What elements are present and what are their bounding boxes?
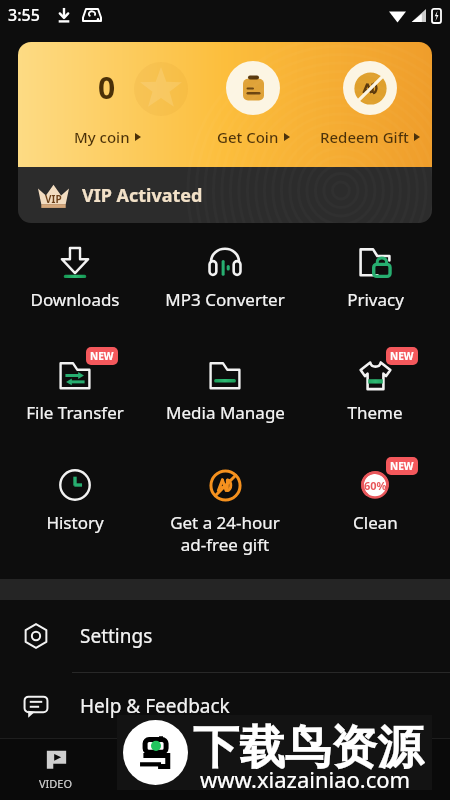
button[interactable]: GAME xyxy=(224,739,337,800)
button[interactable]: Settings xyxy=(0,600,450,672)
staticText: Settings xyxy=(80,623,153,649)
staticText: 下载鸟资源 xyxy=(193,719,423,777)
button[interactable]: ME xyxy=(337,739,450,800)
staticText: File Transfer xyxy=(26,401,124,424)
staticText: My coin xyxy=(74,127,130,147)
staticText: Privacy xyxy=(347,288,404,311)
button[interactable]: 60% xyxy=(300,468,450,534)
button[interactable]: History xyxy=(0,468,150,534)
staticText: VIP xyxy=(45,192,62,206)
button[interactable]: Redeem Gift xyxy=(300,42,432,167)
staticText: Clean xyxy=(353,511,398,534)
staticText: MP3 Converter xyxy=(165,288,285,311)
staticText: Help & Feedback xyxy=(80,693,230,719)
staticText: Redeem Gift xyxy=(320,127,409,147)
staticText: 0 xyxy=(98,67,116,108)
staticText: Theme xyxy=(347,401,403,424)
staticText: GAME xyxy=(265,776,297,791)
staticText: www.xiazainiao.com xyxy=(200,764,411,794)
staticText: NEW xyxy=(390,459,414,473)
button[interactable]: MP3 Converter xyxy=(150,245,300,311)
button[interactable]: Downloads xyxy=(0,245,150,311)
staticText: Media Manage xyxy=(166,401,285,424)
button[interactable]: Get a 24-hour ad-free gift xyxy=(150,468,300,556)
staticText: 60% xyxy=(364,478,387,493)
button[interactable]: 0 xyxy=(37,42,177,167)
staticText: MUSIC xyxy=(151,776,186,791)
staticText: Get a 24-hour ad-free gift xyxy=(170,511,280,556)
staticText: 3:55 xyxy=(8,4,40,26)
button[interactable]: VIDEO xyxy=(0,739,112,800)
staticText: Downloads xyxy=(30,288,120,311)
button[interactable]: Help & Feedback xyxy=(0,673,450,738)
button[interactable]: Get Coin xyxy=(183,42,323,167)
staticText: Get Coin xyxy=(217,127,279,147)
staticText: NEW xyxy=(90,349,114,363)
button[interactable]: Media Manage xyxy=(150,358,300,424)
staticText: VIDEO xyxy=(39,776,73,791)
staticText: History xyxy=(46,511,104,534)
button[interactable]: MUSIC xyxy=(112,739,224,800)
button[interactable]: NEW xyxy=(300,358,450,424)
staticText: VIP Activated xyxy=(82,183,203,208)
button[interactable]: NEW xyxy=(0,358,150,424)
staticText: NEW xyxy=(390,349,414,363)
button[interactable]: Privacy xyxy=(300,245,450,311)
staticText: ME xyxy=(385,776,402,791)
